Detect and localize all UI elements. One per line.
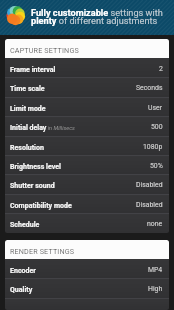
button[interactable]: Time scale — [5, 77, 169, 97]
button[interactable]: Quality — [5, 278, 169, 298]
staticText: Resolution — [10, 143, 44, 151]
button[interactable]: Shutter sound — [5, 174, 169, 194]
staticText: Frame interval — [10, 65, 56, 73]
staticText: Encoder — [10, 266, 36, 274]
staticText: User — [148, 104, 163, 112]
button[interactable] — [5, 298, 169, 310]
staticText: Fully customizable settings with plenty … — [31, 7, 163, 26]
staticText: 2 — [159, 65, 163, 73]
button[interactable]: Resolution — [5, 136, 169, 155]
staticText: CAPTURE SETTINGS — [10, 46, 79, 54]
staticText: Quality — [10, 285, 33, 293]
button[interactable]: Compatibility mode — [5, 194, 169, 213]
staticText: Compatibility mode — [10, 201, 72, 209]
staticText: Shutter sound — [10, 181, 55, 189]
staticText: 50% — [150, 162, 163, 170]
staticText: Time scale — [10, 84, 45, 92]
staticText: Disabled — [136, 181, 163, 189]
button[interactable]: Brightness level — [5, 155, 169, 174]
staticText: RENDER SETTINGS — [10, 247, 75, 255]
staticText: none — [147, 220, 163, 228]
button[interactable]: Limit mode — [5, 97, 169, 116]
staticText: 500 — [151, 123, 163, 131]
button[interactable]: Frame interval — [5, 58, 169, 77]
button[interactable]: Encoder — [5, 259, 169, 278]
staticText: Seconds — [136, 84, 163, 92]
staticText: Initial delay in Millisecs — [10, 123, 75, 131]
staticText: Limit mode — [10, 104, 46, 112]
button[interactable]: Initial delay in Millisecs — [5, 116, 169, 136]
staticText: 1080p — [143, 143, 163, 151]
staticText: Schedule — [10, 220, 40, 228]
staticText: Brightness level — [10, 162, 61, 170]
staticText: MP4 — [148, 266, 163, 274]
button[interactable]: Schedule — [5, 213, 169, 233]
staticText: High — [148, 285, 163, 293]
staticText: Disabled — [136, 201, 163, 209]
